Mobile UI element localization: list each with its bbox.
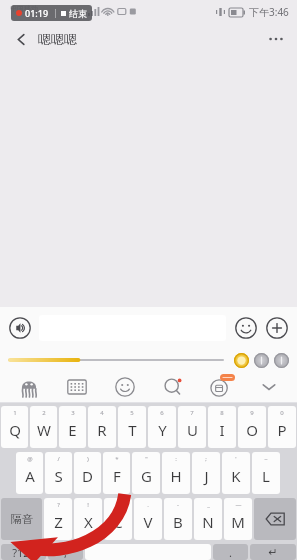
- staticText: T: [128, 420, 137, 440]
- staticText: 3: [71, 409, 75, 417]
- staticText: X: [84, 512, 93, 532]
- button[interactable]: More options: [261, 24, 291, 54]
- staticText: *: [115, 455, 119, 463]
- button[interactable]: Keyboard: [53, 371, 101, 403]
- button[interactable]: ?123: [1, 544, 46, 560]
- button[interactable]: ;: [192, 452, 220, 494]
- button[interactable]: 6: [148, 406, 176, 448]
- staticText: U: [187, 420, 198, 440]
- button[interactable]: Back: [8, 26, 34, 52]
- staticText: 下午3:46: [249, 5, 289, 19]
- button[interactable]: 8: [208, 406, 236, 448]
- staticText: ': [235, 455, 237, 463]
- button[interactable]: Space: [85, 544, 211, 560]
- staticText: 0: [280, 409, 284, 417]
- button[interactable]: —: [224, 498, 252, 540]
- staticText: 隔音: [11, 512, 33, 526]
- staticText: M: [231, 512, 245, 532]
- staticText: ~: [264, 455, 268, 463]
- button[interactable]: 9: [238, 406, 266, 448]
- button[interactable]: .: [134, 498, 162, 540]
- button[interactable]: Backspace: [254, 498, 296, 540]
- button[interactable]: Emoji: [233, 315, 259, 341]
- staticText: .: [229, 545, 232, 560]
- staticText: ,: [64, 545, 67, 560]
- button[interactable]: 0: [268, 406, 296, 448]
- button[interactable]: 5: [118, 406, 146, 448]
- button[interactable]: Collapse: [245, 371, 293, 403]
- staticText: 8: [220, 409, 224, 417]
- button[interactable]: Add attachment: [264, 315, 290, 341]
- button[interactable]: Mascot: [4, 371, 53, 403]
- staticText: ;: [205, 455, 207, 463]
- staticText: 1: [13, 409, 17, 417]
- staticText: 4: [100, 409, 104, 417]
- button[interactable]: @: [16, 452, 43, 494]
- button[interactable]: 01:19: [11, 5, 92, 21]
- staticText: W: [37, 420, 51, 440]
- button[interactable]: Progress: [8, 353, 224, 367]
- staticText: N: [202, 512, 214, 532]
- staticText: R: [97, 420, 107, 440]
- staticText: 2: [42, 409, 46, 417]
- staticText: ?123: [12, 545, 36, 560]
- staticText: —: [235, 501, 242, 509]
- button[interactable]: Emoji: [101, 371, 149, 403]
- button[interactable]: Store: [197, 371, 245, 403]
- staticText: !: [87, 501, 89, 509]
- button[interactable]: ,: [104, 498, 132, 540]
- button[interactable]: ~: [252, 452, 280, 494]
- button[interactable]: 1: [1, 406, 28, 448]
- button[interactable]: ): [74, 452, 101, 494]
- button[interactable]: /: [45, 452, 72, 494]
- staticText: I: [219, 420, 225, 440]
- staticText: O: [246, 420, 258, 440]
- staticText: S: [54, 466, 63, 486]
- staticText: ↵: [268, 546, 278, 559]
- button[interactable]: Voice input: [7, 315, 33, 341]
- staticText: K: [231, 466, 241, 486]
- staticText: ": [145, 455, 148, 463]
- button[interactable]: 隔音: [1, 498, 42, 540]
- staticText: Y: [158, 420, 167, 440]
- staticText: V: [143, 512, 153, 532]
- staticText: /: [57, 455, 60, 463]
- staticText: Q: [9, 420, 21, 440]
- staticText: A: [25, 466, 35, 486]
- staticText: ?: [57, 501, 60, 509]
- staticText: C: [113, 512, 123, 532]
- staticText: 5: [130, 409, 134, 417]
- button[interactable]: :: [162, 452, 190, 494]
- button[interactable]: *: [103, 452, 130, 494]
- button[interactable]: Coin: [254, 353, 269, 368]
- button[interactable]: 嗯嗯嗯: [38, 31, 77, 47]
- staticText: J: [204, 466, 209, 486]
- button[interactable]: ": [132, 452, 160, 494]
- staticText: F: [113, 466, 121, 486]
- button[interactable]: 4: [88, 406, 116, 448]
- button[interactable]: .: [213, 544, 248, 560]
- button[interactable]: ,: [48, 544, 83, 560]
- button[interactable]: Coin: [274, 353, 289, 368]
- staticText: L: [262, 466, 270, 486]
- button[interactable]: ↵: [250, 544, 296, 560]
- button[interactable]: Gold coin: [234, 353, 249, 368]
- staticText: 7: [190, 409, 194, 417]
- staticText: .: [147, 501, 149, 509]
- button[interactable]: _: [194, 498, 222, 540]
- button[interactable]: -: [164, 498, 192, 540]
- staticText: @: [27, 455, 33, 463]
- staticText: 结束: [69, 8, 87, 19]
- button[interactable]: ': [222, 452, 250, 494]
- button[interactable]: ?: [44, 498, 72, 540]
- staticText: 6: [160, 409, 164, 417]
- staticText: _: [207, 501, 210, 509]
- staticText: ): [87, 455, 89, 463]
- button[interactable]: !: [74, 498, 102, 540]
- button[interactable]: 3: [59, 406, 86, 448]
- button[interactable]: Search: [149, 371, 197, 403]
- button[interactable]: 7: [178, 406, 206, 448]
- button[interactable]: 2: [30, 406, 57, 448]
